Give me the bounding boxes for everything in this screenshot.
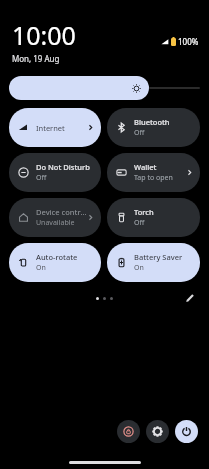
button[interactable]: Emergency: [117, 420, 140, 443]
staticText: 100%: [178, 36, 199, 47]
staticText: Mon, 19 Aug: [12, 53, 60, 64]
button[interactable]: Internet: [9, 108, 101, 147]
button[interactable]: Battery Saver: [107, 243, 200, 282]
button[interactable]: Do Not Disturb: [9, 153, 101, 192]
button[interactable]: Auto-rotate: [9, 243, 101, 282]
button[interactable]: Device contro..: [9, 198, 101, 237]
staticText: Bluetooth: [134, 117, 170, 127]
staticText: Do Not Disturb: [36, 162, 90, 172]
staticText: Battery Saver: [134, 252, 183, 262]
staticText: Unavailable: [36, 218, 75, 228]
button[interactable]: Wallet: [107, 153, 200, 192]
button[interactable]: Bluetooth: [107, 108, 200, 147]
button[interactable]: Edit tiles: [181, 290, 199, 306]
staticText: On: [36, 263, 46, 273]
button[interactable]: [149, 76, 200, 100]
button[interactable]: Torch: [107, 198, 200, 237]
staticText: Torch: [134, 207, 154, 217]
staticText: Device contro..: [36, 207, 87, 217]
button[interactable]: Power: [175, 420, 198, 443]
button[interactable]: [9, 76, 149, 100]
staticText: Off: [134, 218, 145, 228]
staticText: On: [134, 263, 144, 273]
staticText: 10:00: [12, 18, 76, 52]
staticText: Off: [36, 173, 47, 183]
button[interactable]: Settings: [146, 420, 169, 443]
staticText: Wallet: [134, 162, 157, 172]
staticText: Auto-rotate: [36, 252, 78, 262]
staticText: Off: [134, 128, 145, 138]
staticText: Internet: [36, 123, 65, 133]
staticText: Tap to open: [134, 173, 173, 183]
